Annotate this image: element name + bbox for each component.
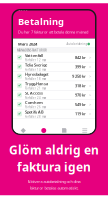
staticText: Förfaller 21 mar [25,87,46,90]
staticText: Du har 7 fakturor att betala denna månad [18,29,88,34]
staticText: Autobetalning [66,42,87,46]
staticText: > [89,64,91,69]
button[interactable]: Kort [54,127,74,139]
staticText: Mer [82,134,87,138]
staticText: Comhem [25,100,43,105]
staticText: Telia Sverige [25,62,47,67]
button[interactable]: Comhem [13,100,95,109]
staticText: Kort [61,134,67,138]
button[interactable]: Hem [13,127,33,139]
button[interactable]: Spotify AB [13,109,95,119]
button[interactable]: Betala [33,127,54,139]
staticText: fakturor betalas automatiskt. [29,185,78,190]
staticText: > [89,55,91,60]
staticText: > [89,102,91,107]
button[interactable]: Trygg-Hansa [13,81,95,90]
staticText: > [89,92,91,98]
staticText: SL Access [25,90,43,96]
staticText: 9 250 kr [72,73,86,79]
staticText: > [89,111,91,116]
staticText: faktura igen [17,159,91,175]
staticText: Glöm aldrig en [9,142,99,158]
staticText: Hem [20,134,26,138]
button[interactable]: Vattenfall [13,53,95,62]
staticText: 119 kr [75,111,86,116]
staticText: 318 kr [75,83,86,88]
button[interactable]: Telia Sverige [13,62,95,72]
staticText: 970 kr [75,92,86,98]
staticText: Aktivera autobetalning och dina [27,179,80,184]
staticText: Förfaller 12 mar [25,58,46,62]
staticText: Betalning [18,15,64,28]
staticText: MÅNADENS FAKTUROR [17,49,47,52]
button[interactable]: Hyresbolaget [13,72,95,81]
staticText: Vattenfall [25,53,43,58]
staticText: 549 kr [75,102,86,107]
staticText: Betala [40,134,48,138]
staticText: Trygg-Hansa [25,81,48,86]
staticText: Förfaller 28 mar [25,115,46,118]
staticText: 842 kr [75,55,86,60]
staticText: Spotify AB [25,109,44,114]
button[interactable]: Mer [74,127,95,139]
staticText: > [89,73,91,79]
staticText: > [89,83,91,88]
staticText: 9:41 [18,5,28,12]
button[interactable]: SL Access [13,90,95,100]
staticText: Förfaller 14 mar [25,68,46,71]
staticText: Mars 2024 [18,41,37,47]
staticText: Förfaller 18 mar [25,77,46,81]
staticText: Hyresbolaget [25,72,49,77]
staticText: Förfaller 26 mar [25,105,46,109]
staticText: Förfaller 24 mar [25,96,46,100]
staticText: 399 kr [75,64,86,69]
